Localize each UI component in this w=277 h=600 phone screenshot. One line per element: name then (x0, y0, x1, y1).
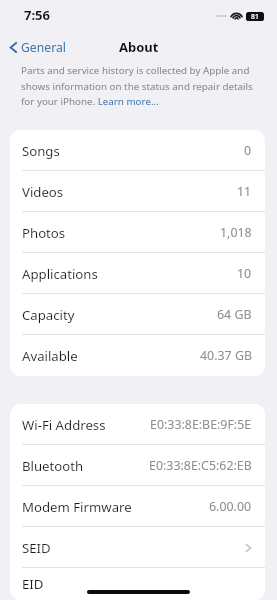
button[interactable]: Photos (10, 212, 265, 253)
button[interactable]: Videos (10, 171, 265, 212)
staticText: Videos (22, 183, 64, 201)
staticText: 64 GB (217, 306, 252, 323)
button[interactable]: Available (10, 335, 265, 376)
staticText: About (119, 38, 159, 56)
staticText: 0 (244, 142, 252, 159)
staticText: Songs (22, 142, 60, 160)
staticText: E0:33:8E:C5:62:EB (149, 457, 252, 474)
other: Back (7, 39, 20, 56)
staticText: General (21, 39, 66, 56)
button[interactable]: EID (10, 568, 265, 600)
button[interactable]: Parts and service history is collected b… (21, 64, 254, 108)
staticText: Photos (22, 224, 66, 242)
staticText: E0:33:8E:BE:9F:5E (150, 416, 252, 433)
button[interactable]: Bluetooth (10, 445, 265, 486)
staticText: Modem Firmware (22, 498, 132, 516)
staticText: 6.00.00 (209, 498, 252, 515)
staticText: EID (22, 575, 44, 593)
staticText: Available (22, 347, 78, 365)
button[interactable]: Back (7, 39, 66, 56)
staticText: 10 (237, 265, 252, 282)
staticText: 7:56 (24, 6, 50, 24)
button[interactable]: Applications (10, 253, 265, 294)
staticText: Bluetooth (22, 457, 84, 475)
button[interactable]: Modem Firmware (10, 486, 265, 527)
button[interactable]: Capacity (10, 294, 265, 335)
button[interactable]: SEID (10, 527, 265, 568)
staticText: 40.37 GB (200, 347, 252, 364)
staticText: SEID (22, 539, 51, 557)
staticText: Parts and service history is collected b… (21, 64, 254, 108)
staticText: Applications (22, 265, 98, 283)
staticText: 11 (237, 183, 252, 200)
staticText: Capacity (22, 306, 75, 324)
staticText: 1,018 (220, 224, 252, 241)
staticText: Wi-Fi Address (22, 416, 106, 434)
button[interactable]: Wi-Fi Address (10, 404, 265, 445)
staticText: 81 (251, 12, 259, 21)
button[interactable]: Songs (10, 130, 265, 171)
